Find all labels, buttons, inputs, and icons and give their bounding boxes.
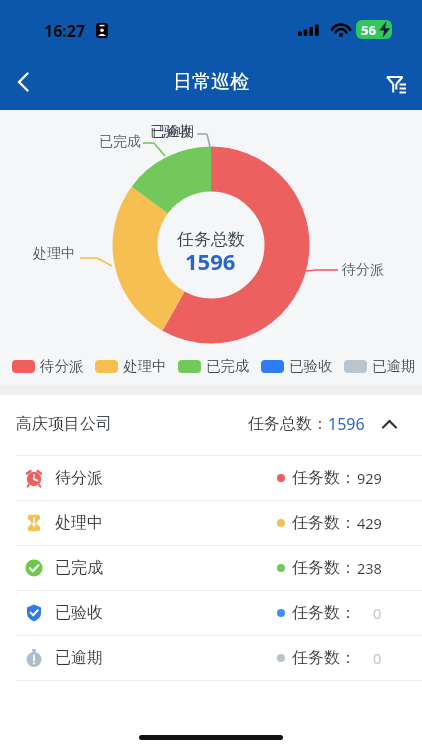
button[interactable]: 待分派 [0,456,422,500]
staticText: 已验收 [289,357,333,375]
button[interactable]: 处理中 [0,501,422,545]
staticText: 高庆项目公司 [16,414,112,434]
staticText: 待分派 [40,357,84,375]
staticText: 已逾期 [55,648,103,668]
staticText: 任务数： [292,603,356,623]
staticText: 任务数： [292,558,356,578]
button[interactable]: 高庆项目公司 [0,395,422,453]
staticText: 待分派 [55,468,103,488]
staticText: 已完成 [55,558,103,578]
staticText: 已验收 [55,603,103,623]
staticText: 已逾期 [372,357,416,375]
staticText: 1596 [185,246,236,276]
staticText: 待分派 [342,261,384,279]
staticText: 16:27 [44,20,86,42]
staticText: 已逾期 [152,123,194,141]
staticText: 处理中 [123,357,167,375]
staticText: 任务数： [292,648,356,668]
staticText: 1596 [328,413,365,435]
staticText: 56 [361,21,376,39]
staticText: 238 [357,558,382,578]
staticText: 已验收 [150,123,192,141]
button[interactable]: 已逾期 [0,636,422,680]
staticText: 任务数： [292,468,356,488]
staticText: 已完成 [206,357,250,375]
staticText: 处理中 [55,513,103,533]
button[interactable]: 已验收 [0,591,422,635]
button[interactable]: 已完成 [0,546,422,590]
staticText: 任务总数： [248,414,328,434]
staticText: 429 [357,513,382,533]
button[interactable] [380,67,414,101]
staticText: 任务数： [292,513,356,533]
staticText: 0 [373,603,382,623]
staticText: 处理中 [33,245,75,263]
staticText: 0 [373,648,382,668]
staticText: 任务总数 [177,229,245,250]
staticText: 日常巡检 [173,70,249,94]
button[interactable] [8,64,42,98]
staticText: 已完成 [99,133,141,151]
staticText: 929 [357,468,382,488]
